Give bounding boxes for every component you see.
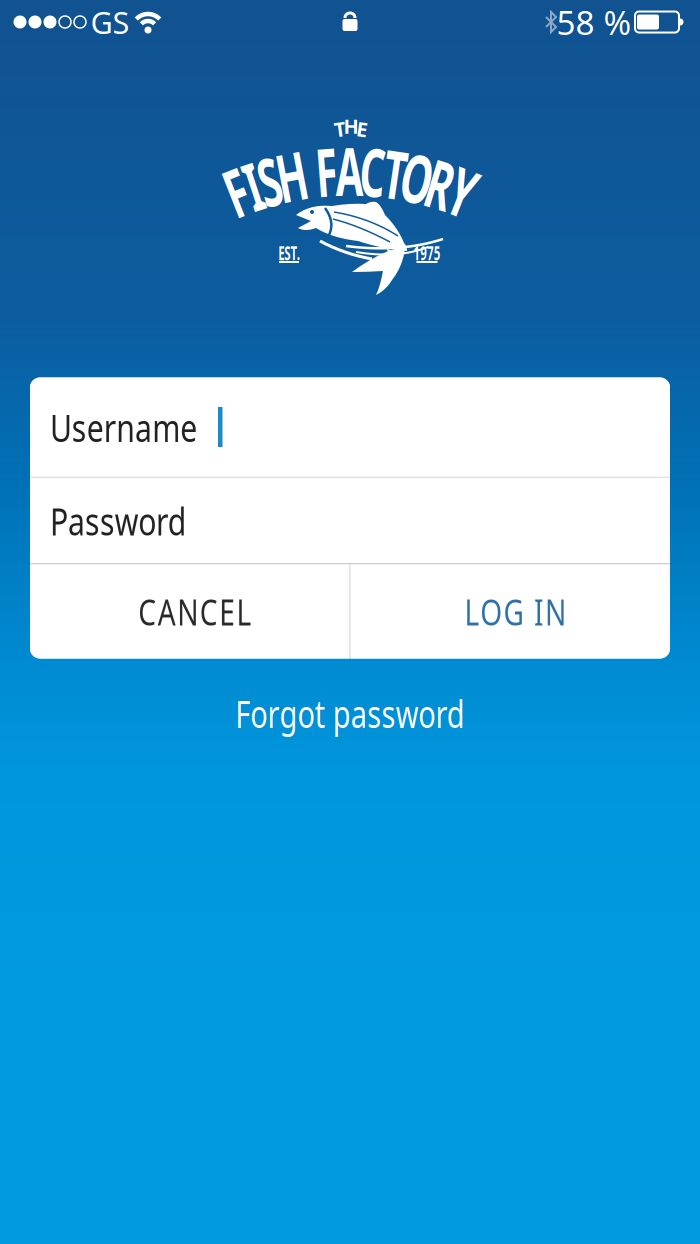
staticText: Username (50, 401, 239, 453)
staticText: F (218, 147, 255, 236)
staticText: T (376, 129, 414, 217)
button[interactable]: Forgot password (197, 687, 503, 739)
staticText (301, 128, 318, 217)
staticText: A (326, 126, 372, 214)
staticText: LOG IN (450, 588, 580, 635)
staticText: GS (90, 2, 129, 42)
staticText: E (356, 116, 367, 142)
staticText: C (351, 127, 394, 215)
staticText: Password (50, 495, 225, 546)
staticText: T (334, 116, 346, 142)
staticText: I (240, 141, 266, 230)
staticText: F (308, 127, 345, 215)
staticText: CANCEL (122, 588, 267, 635)
staticText: O (391, 133, 444, 222)
staticText: S (251, 136, 288, 225)
staticText: Forgot password (197, 687, 503, 739)
button[interactable]: LOG IN (351, 564, 670, 658)
staticText: Y (442, 147, 484, 235)
button[interactable]: Username (30, 377, 670, 476)
staticText: 1975 (405, 241, 449, 265)
staticText: R (419, 139, 463, 228)
button[interactable]: Password (30, 478, 670, 563)
staticText: EST. (271, 241, 306, 265)
button[interactable]: CANCEL (30, 564, 349, 658)
staticText: 58 % (556, 0, 631, 44)
staticText: H (266, 131, 317, 220)
staticText: H (343, 113, 358, 139)
